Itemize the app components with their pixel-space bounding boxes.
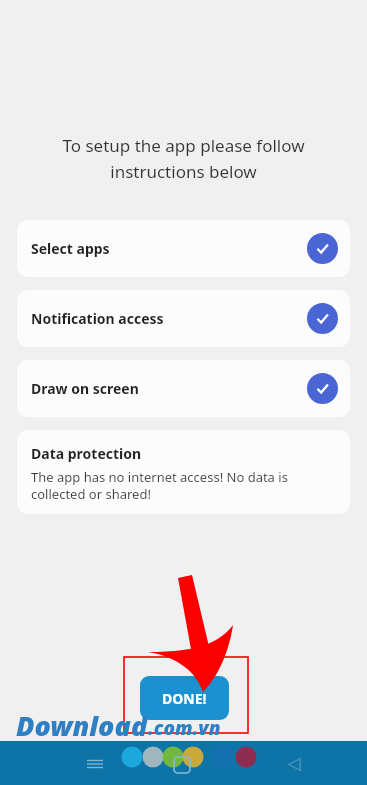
button[interactable]: Back	[283, 753, 305, 775]
button[interactable]: Recent apps	[84, 753, 106, 775]
staticText: Download	[16, 707, 148, 744]
button[interactable]: Select apps	[17, 220, 350, 277]
staticText: DONE!	[162, 689, 207, 708]
staticText: Draw on screen	[31, 379, 139, 398]
button[interactable]: Completed	[307, 303, 338, 334]
staticText: Select apps	[31, 239, 110, 258]
staticText: Notification access	[31, 309, 164, 328]
button[interactable]: Draw on screen	[17, 360, 350, 417]
staticText: The app has no internet access! No data …	[31, 468, 336, 503]
button[interactable]: Data protection	[17, 430, 350, 514]
staticText: Data protection	[31, 444, 142, 463]
staticText: To setup the app please follow instructi…	[40, 134, 327, 183]
button[interactable]: DONE!	[140, 676, 229, 720]
button[interactable]: Completed	[307, 373, 338, 404]
button[interactable]: Notification access	[17, 290, 350, 347]
button[interactable]: Completed	[307, 233, 338, 264]
button[interactable]: Home	[172, 755, 192, 775]
staticText: .com.vn	[148, 715, 221, 741]
